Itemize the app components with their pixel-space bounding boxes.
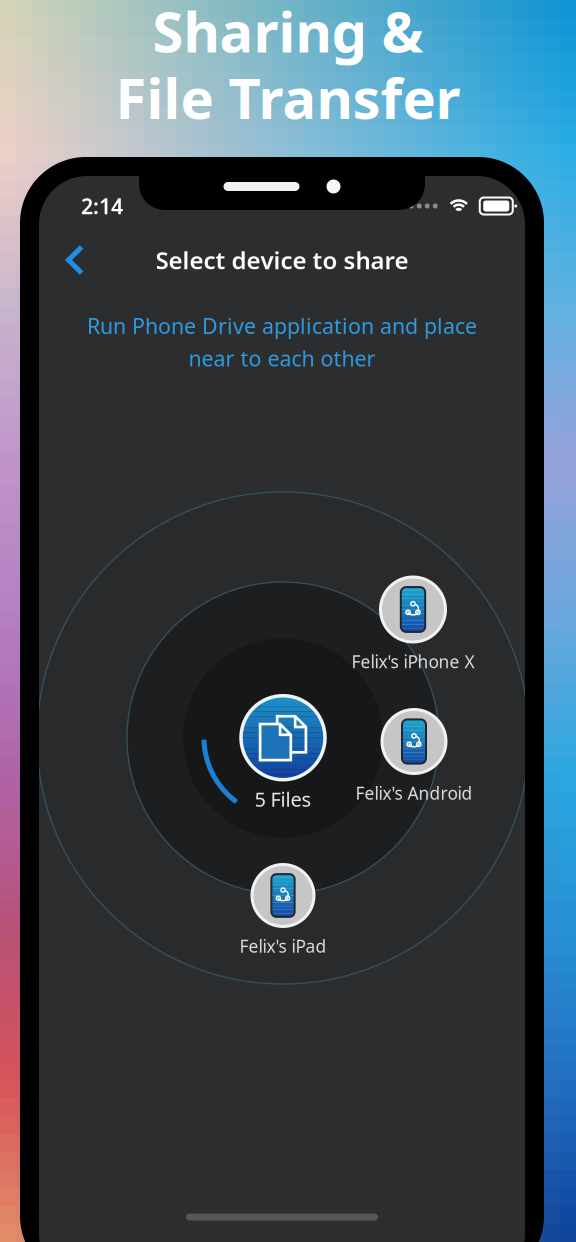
staticText: near to each other [188,344,375,372]
staticText: Felix's iPad [239,934,326,957]
staticText: 2:14 [81,192,123,220]
button[interactable]: Felix's iPhone X [351,577,474,673]
staticText: Felix's iPhone X [351,650,474,673]
staticText: Felix's Android [355,781,472,804]
staticText: 5 Files [254,786,311,812]
staticText: Run Phone Drive application and place [87,312,477,340]
staticText: File Transfer [115,60,460,134]
staticText: Sharing & [152,0,423,68]
button[interactable]: Back [51,236,99,284]
button[interactable]: Felix's Android [355,709,472,804]
button[interactable]: Felix's iPad [239,864,326,957]
staticText: Select device to share [155,244,408,276]
